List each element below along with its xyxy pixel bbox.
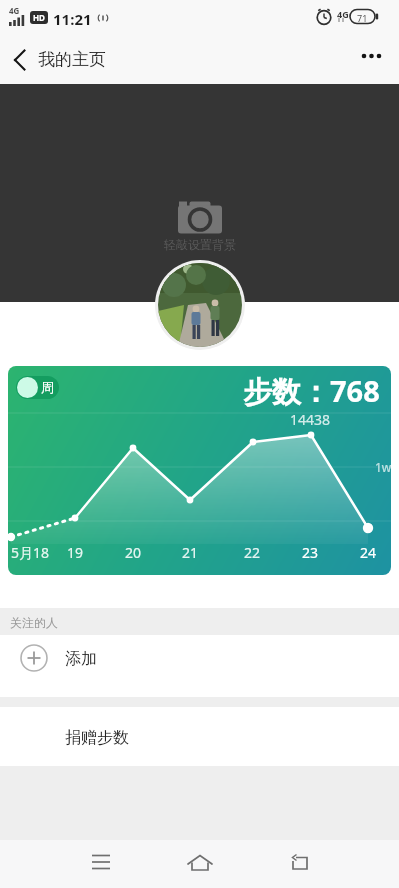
button[interactable] bbox=[6, 43, 40, 77]
staticText: 1w bbox=[375, 459, 391, 475]
button[interactable] bbox=[178, 840, 222, 884]
button[interactable] bbox=[278, 840, 322, 884]
staticText: 71 bbox=[357, 12, 368, 24]
staticText: 19 bbox=[67, 543, 84, 562]
staticText: 14438 bbox=[290, 410, 331, 429]
staticText: HD bbox=[33, 12, 45, 23]
staticText: 5月18 bbox=[11, 543, 50, 562]
button[interactable] bbox=[354, 39, 390, 75]
staticText: 11:21 bbox=[53, 9, 92, 29]
button[interactable]: 轻敲设置背景 bbox=[0, 84, 399, 302]
staticText: 22 bbox=[244, 543, 261, 562]
button[interactable]: 添加 bbox=[0, 635, 399, 697]
button[interactable]: 周 bbox=[16, 376, 59, 399]
button[interactable] bbox=[79, 840, 123, 884]
staticText: 添加 bbox=[65, 649, 97, 669]
staticText: 捐赠步数 bbox=[65, 728, 129, 748]
staticText: 步数：768 bbox=[243, 371, 380, 411]
staticText: 21 bbox=[182, 543, 199, 562]
staticText: 我的主页 bbox=[38, 49, 106, 70]
staticText: 24 bbox=[360, 543, 377, 562]
button[interactable]: 捐赠步数 bbox=[0, 707, 399, 766]
staticText: 关注的人 bbox=[10, 615, 58, 630]
staticText: 4G bbox=[337, 8, 349, 20]
staticText: 20 bbox=[125, 543, 142, 562]
staticText: 周 bbox=[41, 379, 54, 395]
staticText: 4G bbox=[9, 5, 20, 16]
button[interactable] bbox=[155, 260, 245, 350]
staticText: 轻敲设置背景 bbox=[164, 237, 236, 252]
staticText: 23 bbox=[302, 543, 319, 562]
